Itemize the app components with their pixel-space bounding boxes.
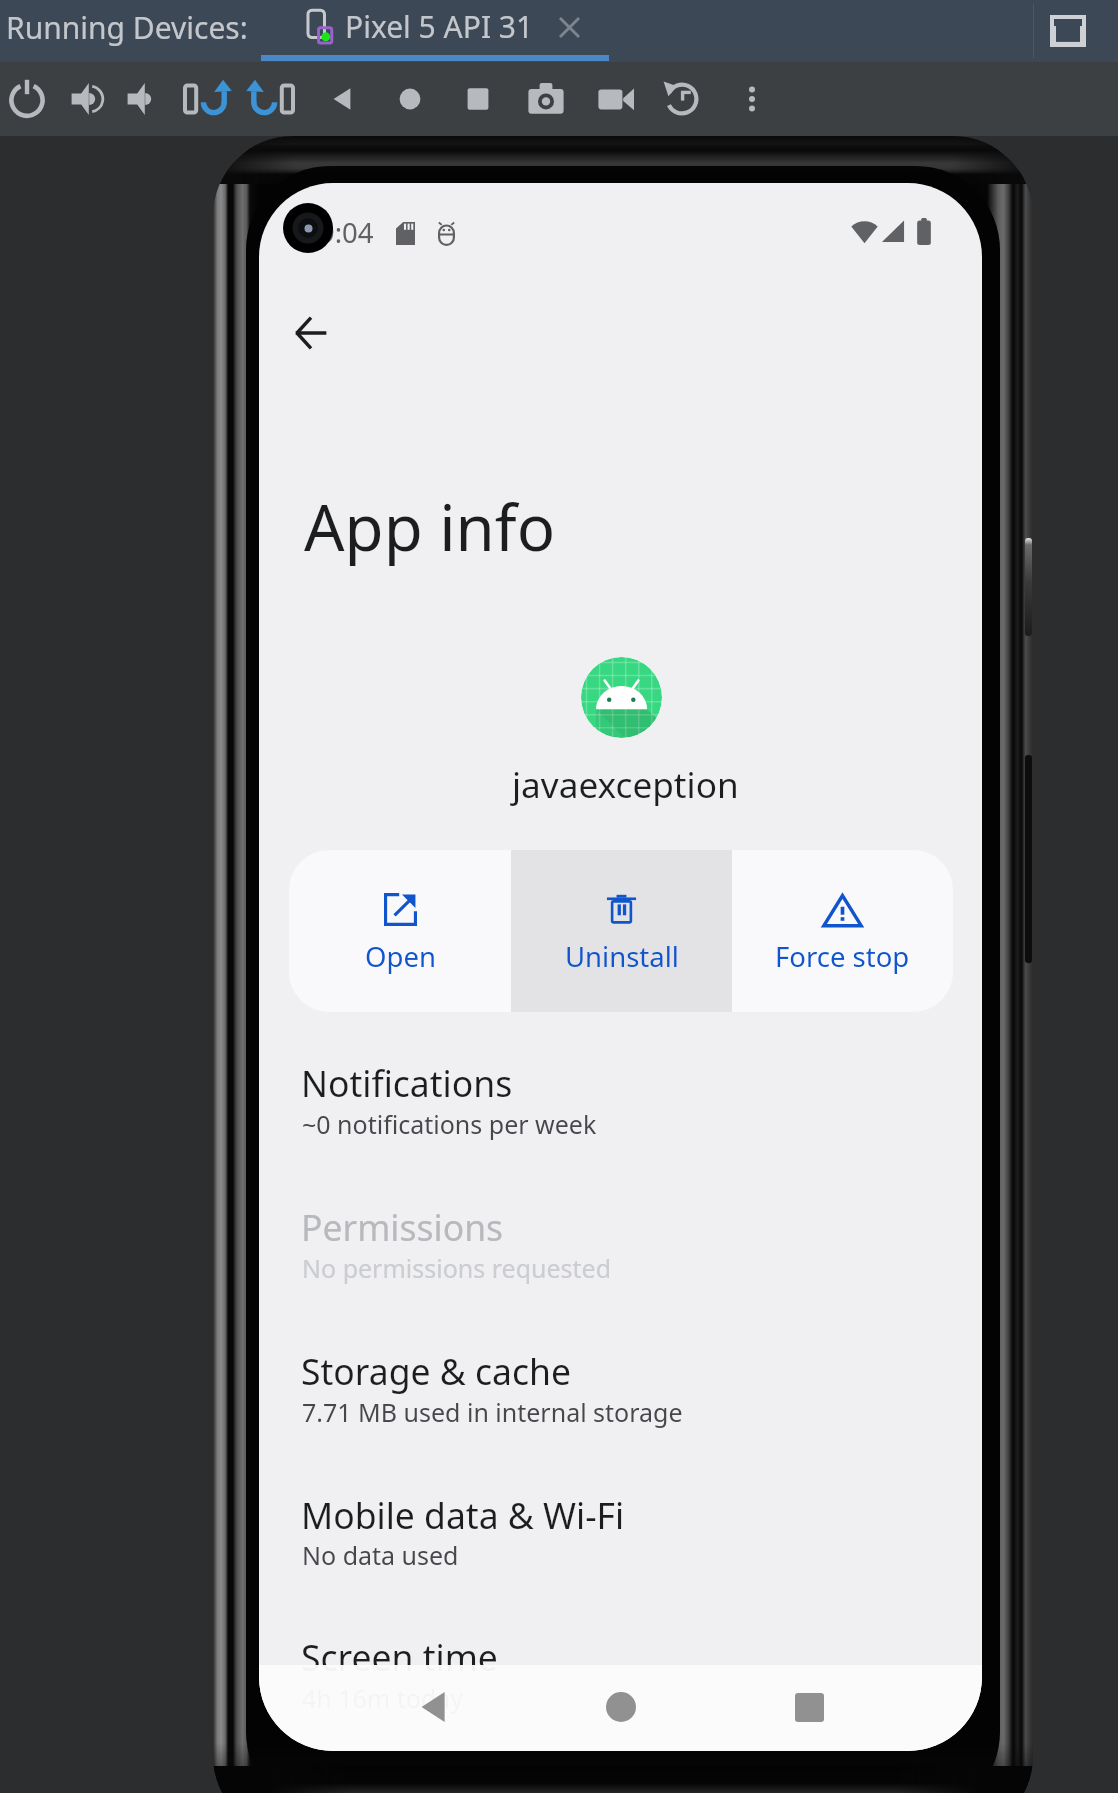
staticText: Notifications [301,1059,513,1107]
staticText: Force stop [775,938,910,975]
button[interactable]: Force stop [732,850,953,1012]
button[interactable]: Close tab [552,10,587,45]
button[interactable]: Open [289,850,511,1012]
button[interactable]: Volume down [119,76,165,122]
staticText: 4h 16m today [302,1681,464,1715]
button[interactable]: Uninstall [511,850,732,1012]
button[interactable]: Overview [455,76,501,122]
button[interactable] [259,1201,982,1313]
staticText: Pixel 5 API 31 [345,6,534,47]
staticText: App info [304,483,556,569]
button[interactable]: Back [281,303,341,363]
button[interactable]: Take screenshot [523,76,569,122]
button[interactable]: Rotate right [250,76,296,122]
button[interactable] [259,1489,982,1601]
button[interactable]: Home [387,76,433,122]
button[interactable] [259,1345,982,1457]
staticText: No data used [302,1538,459,1572]
staticText: Uninstall [565,938,679,975]
staticText: No permissions requested [302,1251,612,1285]
staticText: 7.71 MB used in internal storage [302,1395,683,1429]
staticText: Open [365,938,436,975]
button[interactable]: Rotate left [182,76,228,122]
button[interactable]: Volume up [63,76,109,122]
button[interactable]: Record screen [593,76,639,122]
button[interactable] [259,1056,982,1168]
staticText: ~0 notifications per week [302,1107,597,1141]
button[interactable] [259,1631,982,1743]
staticText: Storage & cache [301,1347,571,1395]
staticText: javaexception [512,760,739,808]
staticText: Mobile data & Wi-Fi [301,1491,625,1539]
staticText: Running Devices: [6,7,248,48]
button[interactable]: Window layout options [1046,9,1090,53]
button[interactable]: More options [729,76,775,122]
staticText: Permissions [301,1203,504,1251]
button[interactable]: Pixel 5 API 31 [262,0,608,57]
button[interactable]: Home [587,1673,655,1741]
button[interactable]: Device history [659,76,705,122]
staticText: 9:04 [319,214,374,251]
staticText: Screen time [301,1633,498,1681]
button[interactable]: Back [401,1673,469,1741]
button[interactable]: Power [4,76,50,122]
button[interactable]: Recent apps [775,1673,843,1741]
button[interactable]: Back [319,76,365,122]
